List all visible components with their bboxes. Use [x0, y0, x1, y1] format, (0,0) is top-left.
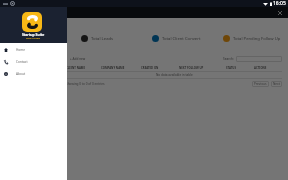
staticText: Total Client Convert — [162, 36, 201, 42]
staticText: Next — [273, 82, 280, 86]
staticText: Previous — [254, 82, 267, 86]
staticText: COMPANY NAME — [101, 66, 141, 70]
staticText: Home — [16, 48, 26, 52]
staticText: Showing 0 to 0 of 0 entries — [66, 82, 105, 86]
button[interactable]: Home — [0, 44, 67, 56]
button[interactable]: Previous — [252, 81, 269, 87]
staticText: ACTIONS — [254, 66, 282, 70]
staticText: Total Pending Follow Up — [233, 36, 281, 42]
button[interactable] — [0, 7, 288, 180]
staticText: Startup Suite — [22, 32, 45, 37]
button[interactable]: Close — [276, 9, 284, 17]
staticText: 16:05 — [273, 0, 286, 7]
staticText: Total Leads — [91, 36, 114, 42]
button[interactable]: Contact — [0, 56, 67, 68]
staticText: CREATED ON — [141, 66, 179, 70]
staticText: About — [16, 72, 26, 76]
staticText: No data available in table — [156, 73, 193, 77]
button[interactable]: Total Leads — [72, 27, 142, 49]
button[interactable]: Next — [271, 81, 282, 87]
button[interactable] — [236, 56, 282, 62]
staticText: + Add new — [70, 57, 86, 61]
button[interactable]: + Add new — [69, 56, 87, 62]
staticText: CRM SYSTEM — [26, 37, 41, 40]
staticText: NEXT FOLLOW UP — [179, 66, 226, 70]
staticText: Contact — [16, 60, 28, 64]
button[interactable]: Total Pending Follow Up — [214, 27, 284, 49]
staticText: STATUS — [226, 66, 254, 70]
button[interactable]: Total Client Convert — [143, 27, 213, 49]
staticText: Search: — [223, 57, 234, 61]
button[interactable]: About — [0, 68, 67, 80]
staticText: CLIENT NAME — [66, 66, 101, 70]
